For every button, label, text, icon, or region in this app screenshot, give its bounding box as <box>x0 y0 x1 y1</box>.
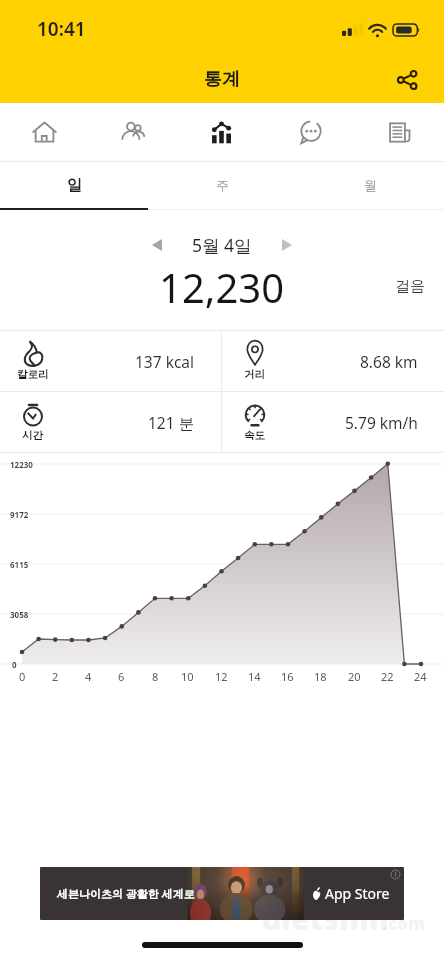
button[interactable]: 속도 <box>222 392 444 452</box>
button[interactable]: 시간 <box>0 392 221 452</box>
staticText: 걸음 <box>395 277 425 296</box>
staticText: 10:41 <box>37 16 86 42</box>
button[interactable]: Next day <box>267 226 307 263</box>
staticText: 137 kcal <box>135 351 195 372</box>
staticText: 세븐나이츠의 광활한 세계로 <box>57 886 195 901</box>
button[interactable]: Statistics <box>177 103 266 161</box>
staticText: 9172 <box>10 509 29 520</box>
staticText: App Store <box>325 884 390 903</box>
button[interactable]: 거리 <box>222 331 444 391</box>
staticText: 일 <box>67 176 82 195</box>
staticText: 6 <box>118 669 125 684</box>
button[interactable]: News <box>355 103 444 161</box>
staticText: 8.68 km <box>360 351 418 372</box>
button[interactable]: 세븐나이츠의 광활한 세계로 <box>40 867 404 920</box>
staticText: 월 <box>364 177 377 193</box>
staticText: 시간 <box>22 429 43 442</box>
staticText: 121 분 <box>148 412 195 433</box>
staticText: 2 <box>52 669 59 684</box>
staticText: 22 <box>381 669 394 684</box>
staticText: 통계 <box>204 68 240 91</box>
button[interactable]: Home <box>0 103 88 161</box>
staticText: 18 <box>314 669 327 684</box>
staticText: .com <box>383 912 425 935</box>
staticText: 12230 <box>10 459 33 470</box>
button[interactable]: 주 <box>148 162 296 208</box>
staticText: 20 <box>348 669 361 684</box>
staticText: 4 <box>85 669 92 684</box>
staticText: 12,230 <box>159 260 285 314</box>
staticText: 칼로리 <box>17 368 49 381</box>
staticText: 5월 4일 <box>192 233 252 257</box>
staticText: 14 <box>248 669 261 684</box>
staticText: 거리 <box>244 368 265 381</box>
staticText: 24 <box>414 669 427 684</box>
staticText: 주 <box>216 177 229 193</box>
button[interactable]: 월 <box>296 162 444 208</box>
staticText: 6115 <box>10 559 29 570</box>
button[interactable]: Friends <box>88 103 177 161</box>
button[interactable]: Share <box>386 59 428 101</box>
staticText: 8 <box>152 669 159 684</box>
button[interactable]: Chat <box>266 103 355 161</box>
staticText: 16 <box>281 669 294 684</box>
staticText: 12 <box>215 669 228 684</box>
staticText: 3058 <box>10 609 29 620</box>
staticText: 5.79 km/h <box>345 412 418 433</box>
button[interactable]: Previous day <box>137 226 177 263</box>
staticText: 속도 <box>244 429 265 442</box>
staticText: dietshin <box>262 898 389 939</box>
staticText: 0 <box>19 669 26 684</box>
button[interactable]: 칼로리 <box>0 331 221 391</box>
staticText: 0 <box>12 659 17 670</box>
button[interactable]: 일 <box>0 162 148 208</box>
staticText: 10 <box>181 669 194 684</box>
